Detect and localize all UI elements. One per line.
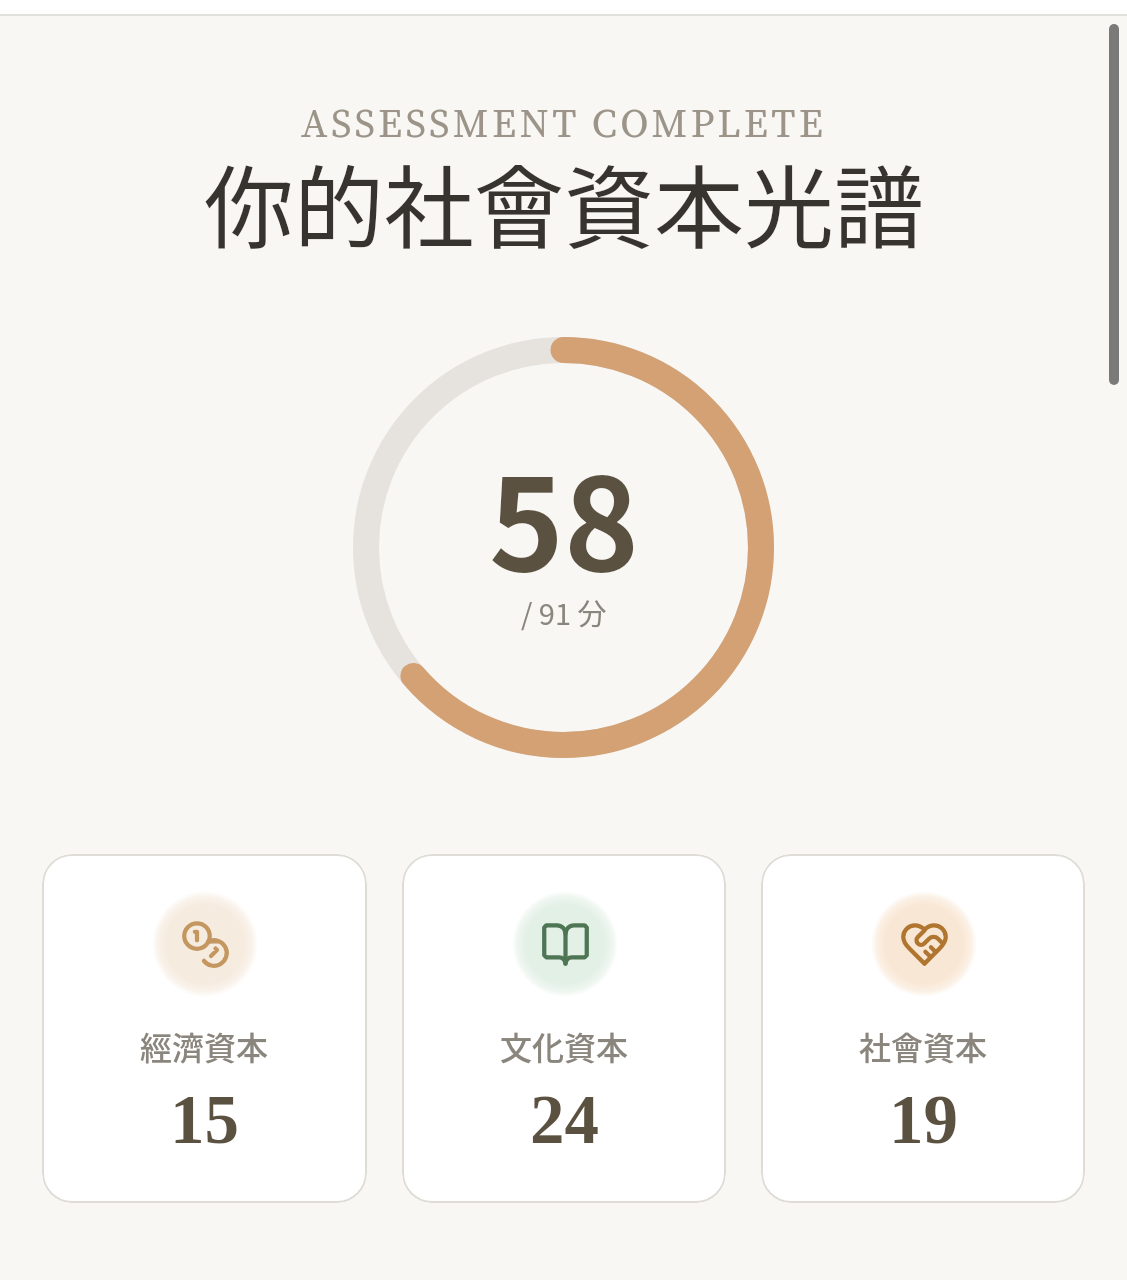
button[interactable]: 社會資本 <box>761 854 1085 1203</box>
staticText: 19 <box>889 1082 958 1158</box>
other: 經濟資本 <box>180 919 231 970</box>
staticText: 你的社會資本光譜 <box>204 137 924 267</box>
staticText: 經濟資本 <box>140 1023 269 1069</box>
button[interactable]: 經濟資本 <box>42 854 367 1203</box>
other: 社會資本 <box>899 919 950 970</box>
staticText: 58 <box>489 424 639 608</box>
staticText: 文化資本 <box>500 1023 629 1069</box>
staticText: ASSESSMENT COMPLETE <box>301 96 827 151</box>
staticText: 15 <box>170 1082 239 1158</box>
staticText: 24 <box>530 1082 599 1158</box>
button[interactable]: 文化資本 <box>402 854 726 1203</box>
staticText: 社會資本 <box>859 1023 988 1069</box>
other: 文化資本 <box>540 919 591 970</box>
staticText: / 91 分 <box>521 591 607 633</box>
